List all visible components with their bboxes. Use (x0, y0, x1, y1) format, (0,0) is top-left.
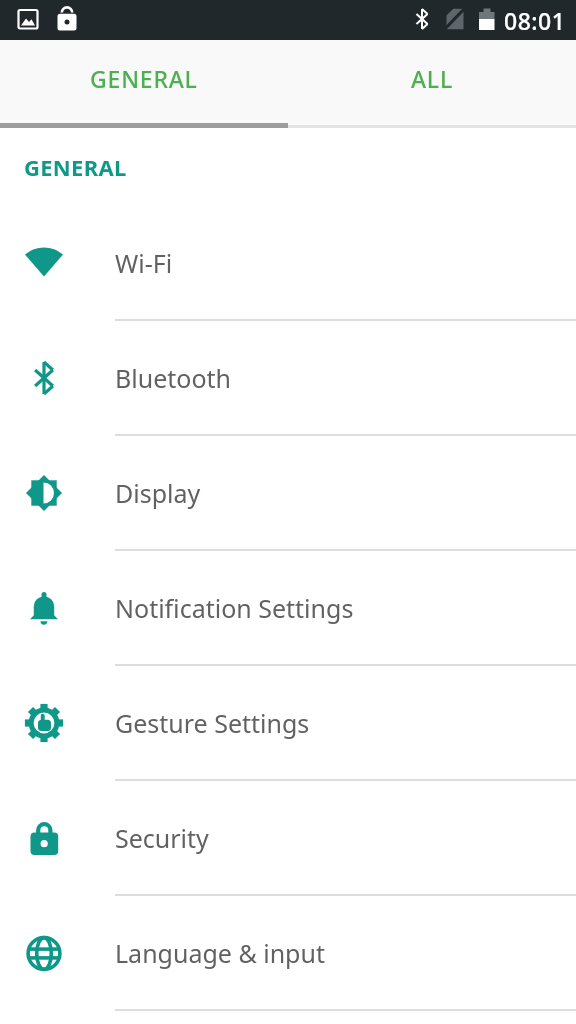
staticText: Gesture Settings (115, 706, 310, 740)
staticText: ALL (411, 63, 454, 94)
button[interactable]: Wi-Fi (0, 206, 576, 319)
button[interactable]: Display (0, 436, 576, 549)
staticText: GENERAL (90, 63, 198, 94)
staticText: Security (115, 821, 209, 855)
button[interactable]: Bluetooth (0, 321, 576, 434)
staticText: Wi-Fi (115, 246, 173, 280)
button[interactable]: Gesture Settings (0, 666, 576, 779)
staticText: Bluetooth (115, 361, 232, 395)
staticText: Notification Settings (115, 591, 354, 625)
staticText: 08:01 (504, 5, 566, 36)
staticText: Display (115, 476, 201, 510)
button[interactable]: ALL (288, 40, 576, 128)
staticText: Language & input (115, 936, 325, 970)
staticText: GENERAL (24, 152, 127, 182)
button[interactable]: Language & input (0, 896, 576, 1009)
button[interactable]: GENERAL (0, 40, 288, 128)
button[interactable]: Security (0, 781, 576, 894)
button[interactable]: Notification Settings (0, 551, 576, 664)
